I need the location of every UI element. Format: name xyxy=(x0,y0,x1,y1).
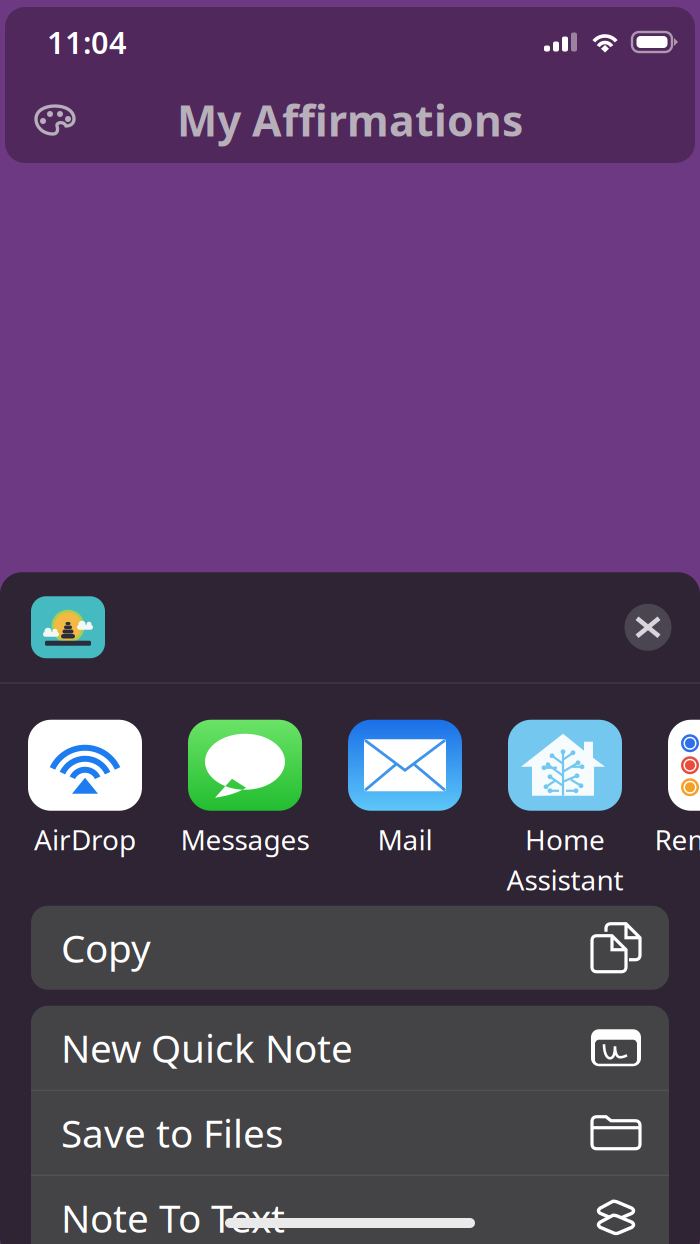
button[interactable]: Reminders xyxy=(645,720,700,910)
staticText: Note To Text xyxy=(61,1192,285,1243)
button[interactable]: Note To Text xyxy=(31,1176,669,1244)
staticText: 11:04 xyxy=(47,22,127,62)
staticText: Messages xyxy=(180,821,309,858)
button[interactable]: Close xyxy=(620,604,676,651)
button[interactable]: Mail xyxy=(325,720,485,910)
staticText: Home xyxy=(525,821,605,858)
staticText: My Affirmations xyxy=(177,92,523,148)
staticText: Reminders xyxy=(654,821,700,858)
button[interactable]: Messages xyxy=(165,720,325,910)
staticText: AirDrop xyxy=(34,821,136,858)
staticText: New Quick Note xyxy=(61,1022,353,1073)
button[interactable]: Change theme xyxy=(25,92,85,148)
staticText: Save to Files xyxy=(61,1107,284,1158)
button[interactable]: Save to Files xyxy=(31,1091,669,1175)
button[interactable]: AirDrop xyxy=(5,720,165,910)
button[interactable]: Home xyxy=(485,720,645,910)
staticText: Copy xyxy=(61,922,151,973)
staticText: Mail xyxy=(377,821,432,858)
button[interactable]: Copy xyxy=(31,906,669,990)
button[interactable]: New Quick Note xyxy=(31,1006,669,1090)
staticText: Assistant xyxy=(506,861,623,898)
